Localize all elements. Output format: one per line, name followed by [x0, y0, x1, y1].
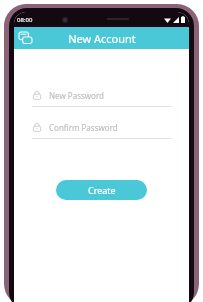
- staticText: New Account: [68, 31, 136, 46]
- staticText: Create: [88, 184, 116, 196]
- staticText: 08:00: [17, 16, 33, 24]
- button[interactable]: Confirm Password: [32, 119, 171, 139]
- button[interactable]: Menu: [17, 30, 33, 46]
- button[interactable]: Create: [56, 180, 147, 200]
- button[interactable]: New Password: [32, 87, 171, 107]
- staticText: New Password: [49, 90, 104, 101]
- staticText: Confirm Password: [49, 122, 118, 133]
